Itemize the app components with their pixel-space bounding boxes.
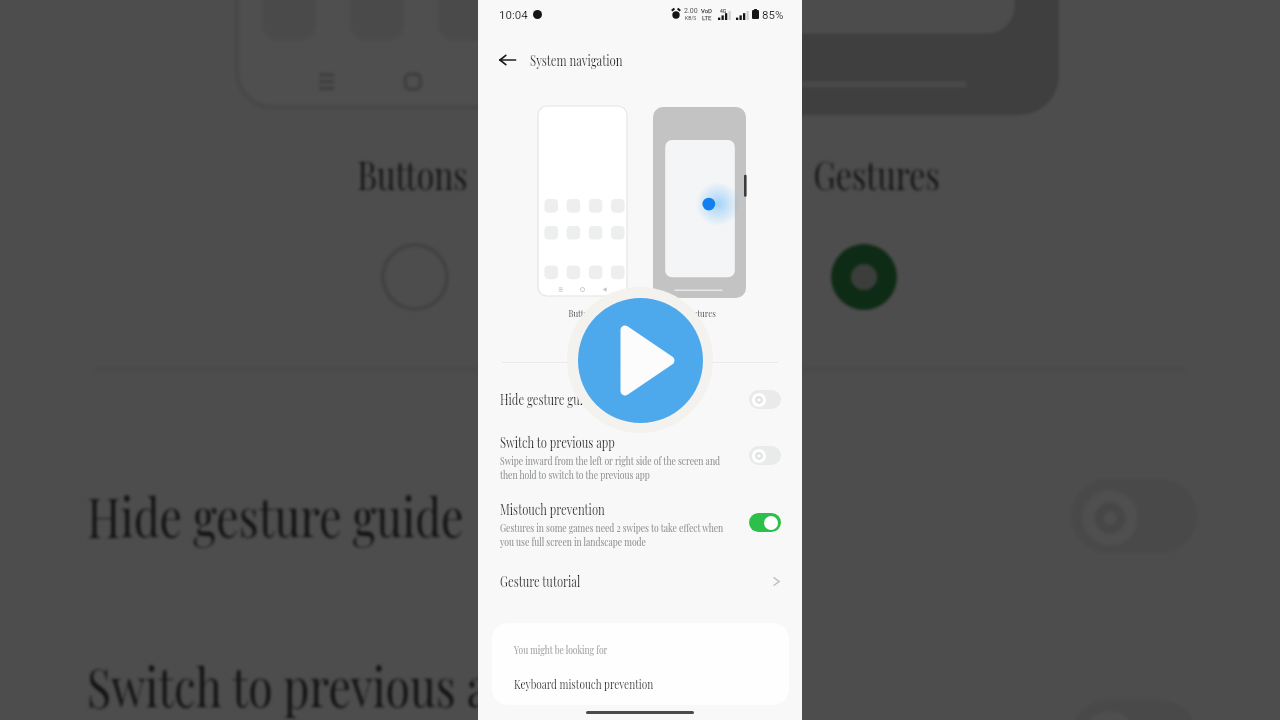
button[interactable]: Gesture tutorial — [478, 566, 802, 596]
staticText: 85% — [762, 8, 784, 21]
staticText: System navigation — [530, 51, 623, 70]
staticText: Gestures — [813, 147, 941, 198]
button[interactable]: Gestures navigation — [691, 0, 1059, 115]
button[interactable]: Hide gesture guide — [478, 390, 802, 416]
staticText: KB/S — [685, 15, 697, 21]
button[interactable]: You might be looking for — [492, 623, 789, 705]
staticText: Swipe inward from the left or right side… — [500, 453, 721, 467]
staticText: Switch to previous app — [500, 433, 615, 452]
button[interactable]: Play — [567, 287, 713, 433]
staticText: Gesture tutorial — [500, 572, 580, 591]
staticText: Keyboard mistouch prevention — [514, 675, 653, 692]
staticText: LTE — [702, 14, 712, 21]
staticText: Gestures in some games need 2 swipes to … — [500, 520, 724, 534]
staticText: Mistouch prevention — [500, 500, 605, 519]
button[interactable]: Gestures navigation — [653, 107, 746, 298]
button[interactable]: Enabled — [749, 513, 781, 532]
button[interactable]: Switch to previous app — [478, 433, 802, 485]
staticText: Switch to previous app — [87, 648, 542, 720]
staticText: Hide gesture guide — [500, 390, 596, 409]
staticText: You might be looking for — [514, 643, 607, 657]
staticText: Hide gesture guide — [87, 478, 465, 554]
staticText: Buttons — [568, 306, 597, 319]
staticText: Gestures — [684, 306, 716, 319]
staticText: 4G — [720, 8, 727, 14]
staticText: then hold to switch to the previous app — [500, 467, 650, 481]
staticText: VoD — [701, 7, 713, 14]
button[interactable]: Buttons navigation — [538, 106, 627, 296]
button[interactable]: Switch to previous app — [0, 648, 1280, 720]
staticText: you use full screen in landscape mode — [500, 534, 646, 548]
staticText: 2.00 — [684, 7, 698, 15]
button[interactable]: Mistouch prevention — [478, 500, 802, 552]
staticText: 10:04 — [499, 8, 528, 21]
button[interactable]: Back — [489, 42, 525, 78]
button[interactable]: Disabled — [749, 446, 781, 465]
button[interactable]: Disabled — [749, 390, 781, 409]
staticText: Buttons — [357, 147, 468, 198]
button[interactable]: Buttons navigation — [237, 0, 589, 107]
button[interactable]: Hide gesture guide — [0, 478, 1280, 581]
